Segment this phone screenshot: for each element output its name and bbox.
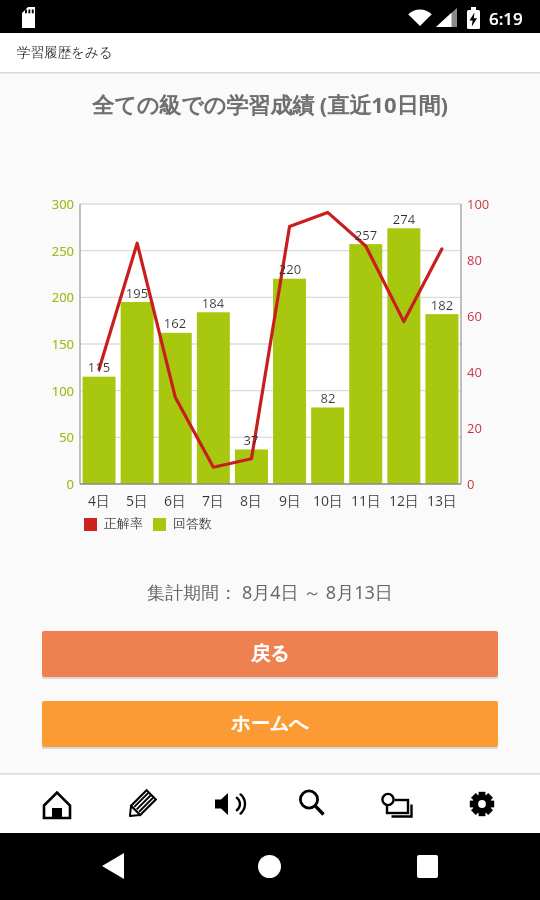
button[interactable] xyxy=(85,838,141,894)
staticText: 正解率 xyxy=(104,515,143,531)
staticText: 115 xyxy=(74,358,124,376)
staticText: 20 xyxy=(467,419,507,437)
staticText: 13日 xyxy=(417,491,467,510)
button[interactable] xyxy=(28,775,86,833)
staticText: 162 xyxy=(150,314,200,332)
staticText: 0 xyxy=(467,475,507,493)
button[interactable] xyxy=(198,775,256,833)
staticText: 戻る xyxy=(251,642,290,666)
staticText: 7日 xyxy=(188,491,238,510)
staticText: ホームへ xyxy=(231,712,309,736)
button[interactable] xyxy=(369,775,427,833)
staticText: 0 xyxy=(28,475,74,493)
staticText: 37 xyxy=(226,431,276,449)
staticText: 82 xyxy=(303,389,353,407)
staticText: 12日 xyxy=(379,491,429,510)
staticText: 11日 xyxy=(341,491,391,510)
staticText: 100 xyxy=(467,195,507,213)
staticText: 60 xyxy=(467,307,507,325)
staticText: 182 xyxy=(417,296,467,314)
staticText: 50 xyxy=(28,428,74,446)
staticText: 9日 xyxy=(265,491,315,510)
staticText: 257 xyxy=(341,226,391,244)
button[interactable] xyxy=(241,838,297,894)
staticText: 5日 xyxy=(112,491,162,510)
staticText: 40 xyxy=(467,363,507,381)
button[interactable] xyxy=(113,775,171,833)
staticText: 全ての級での学習成績 (直近10日間) xyxy=(0,89,540,119)
button[interactable] xyxy=(453,775,511,833)
staticText: 回答数 xyxy=(173,515,212,531)
button[interactable]: 戻る xyxy=(42,631,498,677)
staticText: 200 xyxy=(28,288,74,306)
staticText: 250 xyxy=(28,242,74,260)
staticText: 274 xyxy=(379,210,429,228)
staticText: 10日 xyxy=(303,491,353,510)
staticText: 集計期間： 8月4日 ～ 8月13日 xyxy=(0,580,540,605)
staticText: 100 xyxy=(28,382,74,400)
staticText: 184 xyxy=(188,294,238,312)
button[interactable] xyxy=(284,775,342,833)
button[interactable]: ホームへ xyxy=(42,701,498,747)
staticText: 220 xyxy=(265,260,315,278)
staticText: 150 xyxy=(28,335,74,353)
staticText: 8日 xyxy=(226,491,276,510)
staticText: 80 xyxy=(467,251,507,269)
staticText: 4日 xyxy=(74,491,124,510)
staticText: 195 xyxy=(112,284,162,302)
staticText: 300 xyxy=(28,195,74,213)
staticText: 6日 xyxy=(150,491,200,510)
button[interactable] xyxy=(399,838,455,894)
staticText: 6:19 xyxy=(489,7,523,30)
staticText: 学習履歴をみる xyxy=(17,44,113,61)
